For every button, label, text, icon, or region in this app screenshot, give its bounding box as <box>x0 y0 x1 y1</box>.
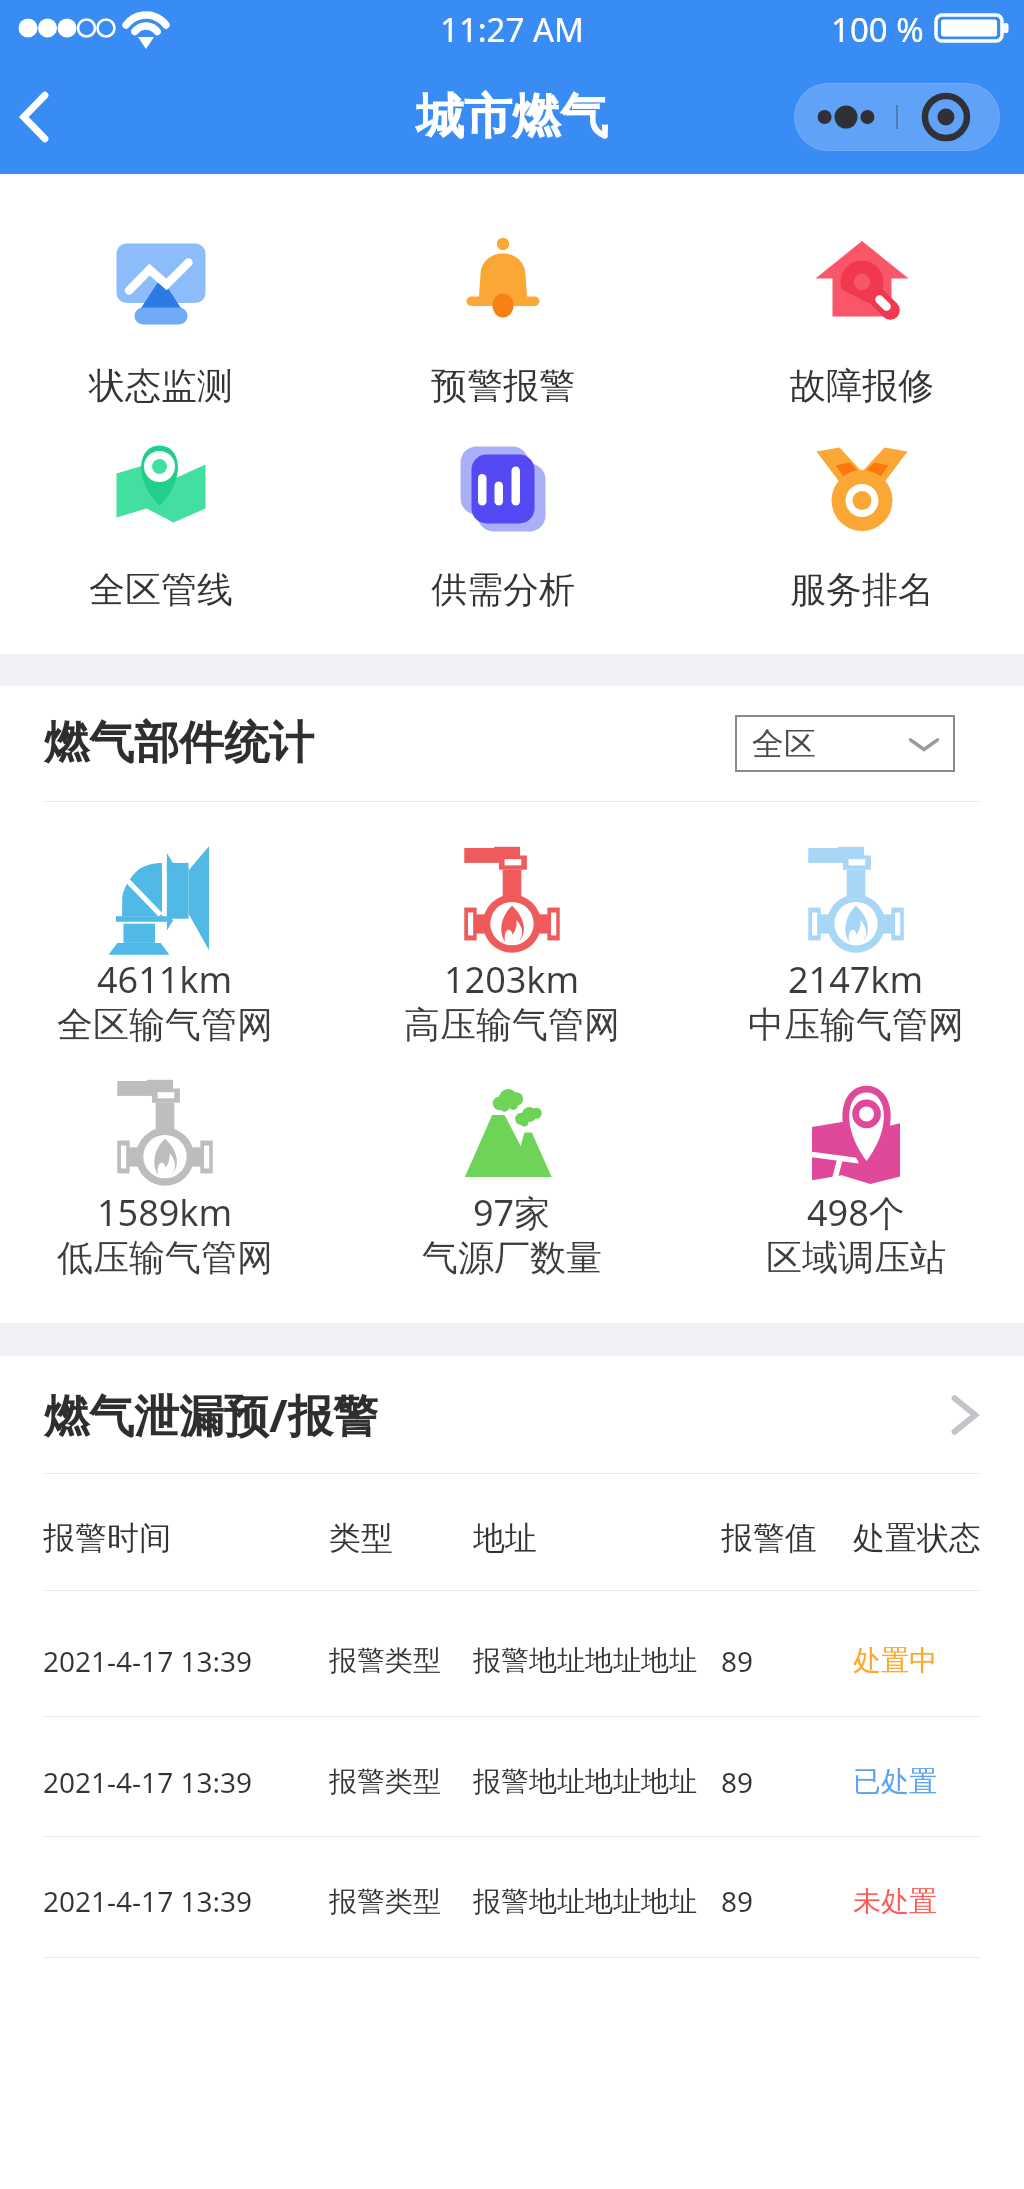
staticText: 全区管线 <box>89 567 233 612</box>
staticText: 报警类型 <box>329 1764 441 1799</box>
button[interactable]: 服务排名 <box>742 378 982 612</box>
staticText: 低压输气管网 <box>57 1235 273 1280</box>
button[interactable]: 2021-4-17 13:39 <box>0 1591 1024 1716</box>
button[interactable]: 1589km <box>5 1035 325 1286</box>
button[interactable]: 1203km <box>352 802 672 1053</box>
staticText: 498个 <box>807 1188 905 1237</box>
staticText: 供需分析 <box>431 567 575 612</box>
staticText: 高压输气管网 <box>404 1002 620 1047</box>
staticText: 89 <box>721 1882 754 1920</box>
staticText: 报警类型 <box>329 1643 441 1678</box>
staticText: 全区输气管网 <box>57 1002 273 1047</box>
staticText: 报警地址地址地址 <box>473 1764 697 1799</box>
staticText: 区域调压站 <box>766 1235 946 1280</box>
staticText: 城市燃气 <box>416 87 608 147</box>
staticText: 中压输气管网 <box>748 1002 964 1047</box>
staticText: 4611km <box>97 955 233 1004</box>
button[interactable]: 供需分析 <box>383 378 623 612</box>
staticText: 类型 <box>329 1518 393 1558</box>
staticText: 状态监测 <box>89 363 233 408</box>
staticText: 1203km <box>444 955 580 1004</box>
staticText: 89 <box>721 1763 754 1801</box>
staticText: 100 % <box>831 7 924 52</box>
staticText: 全区 <box>752 724 816 764</box>
staticText: 燃气部件统计 <box>44 715 314 772</box>
staticText: 已处置 <box>853 1764 937 1799</box>
staticText: 2021-4-17 13:39 <box>43 1882 252 1920</box>
button[interactable]: 状态监测 <box>41 174 281 408</box>
button[interactable]: 全区 <box>735 715 955 772</box>
staticText: 服务排名 <box>790 567 934 612</box>
button[interactable]: 2021-4-17 13:39 <box>0 1837 1024 1957</box>
staticText: 2021-4-17 13:39 <box>43 1642 252 1680</box>
staticText: 处置状态 <box>853 1518 981 1558</box>
button[interactable]: Menu <box>794 83 1000 151</box>
staticText: 燃气泄漏预/报警 <box>44 1384 378 1445</box>
staticText: 报警时间 <box>43 1518 171 1558</box>
button[interactable]: 4611km <box>5 802 325 1053</box>
staticText: 地址 <box>473 1518 537 1558</box>
button[interactable]: 2021-4-17 13:39 <box>0 1717 1024 1836</box>
button[interactable]: 故障报修 <box>742 174 982 408</box>
staticText: 气源厂数量 <box>422 1235 602 1280</box>
staticText: 89 <box>721 1642 754 1680</box>
staticText: 1589km <box>97 1188 233 1237</box>
staticText: 报警地址地址地址 <box>473 1643 697 1678</box>
staticText: 11:27 AM <box>440 7 584 52</box>
button[interactable]: 2147km <box>696 802 1016 1053</box>
staticText: 未处置 <box>853 1884 937 1919</box>
staticText: 报警地址地址地址 <box>473 1884 697 1919</box>
staticText: 2021-4-17 13:39 <box>43 1763 252 1801</box>
staticText: 97家 <box>473 1188 551 1237</box>
staticText: 处置中 <box>853 1643 937 1678</box>
button[interactable]: 预警报警 <box>383 174 623 408</box>
staticText: 报警值 <box>721 1518 817 1558</box>
button[interactable]: 498个 <box>696 1035 1016 1286</box>
button[interactable]: 燃气泄漏预/报警 <box>0 1356 1024 1473</box>
staticText: 故障报修 <box>790 363 934 408</box>
staticText: 2147km <box>788 955 924 1004</box>
button[interactable]: 97家 <box>352 1035 672 1286</box>
button[interactable]: Back <box>2 84 68 150</box>
button[interactable]: 报警时间 <box>0 1474 1024 1590</box>
staticText: 预警报警 <box>431 363 575 408</box>
staticText: 报警类型 <box>329 1884 441 1919</box>
button[interactable]: 全区管线 <box>41 378 281 612</box>
